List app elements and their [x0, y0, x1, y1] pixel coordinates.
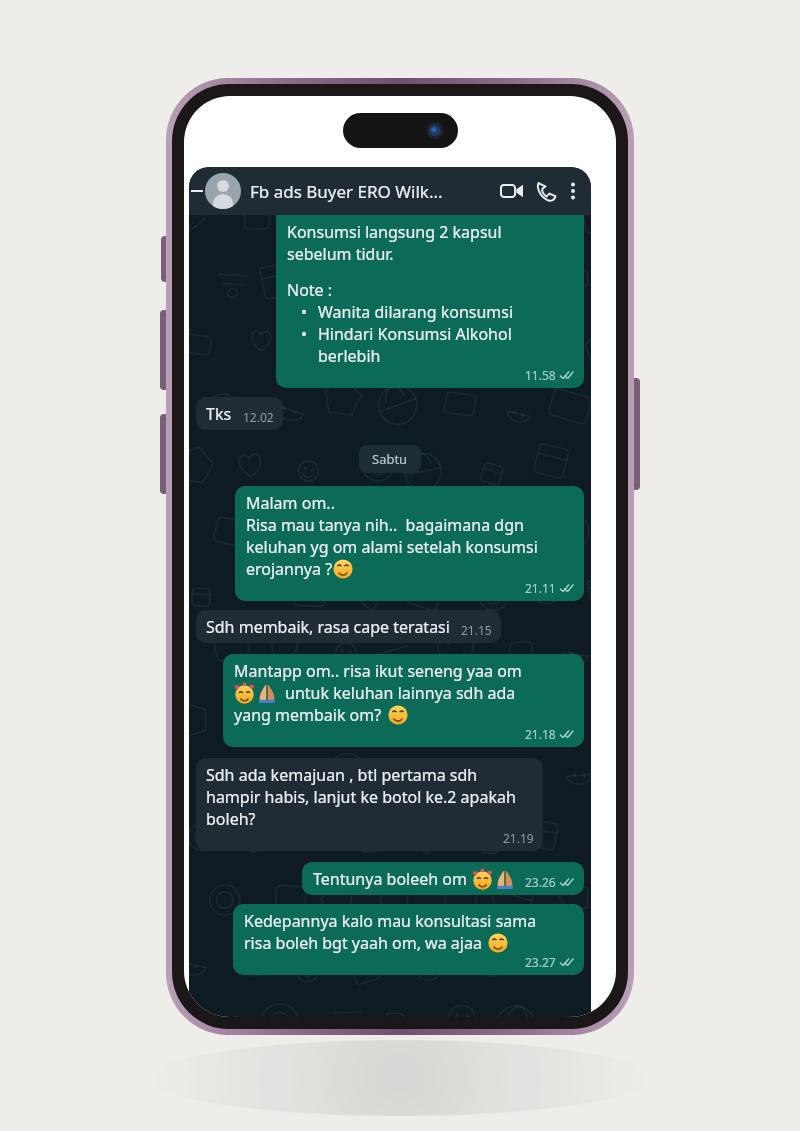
- staticText: Sdh membaik, rasa cape teratasi: [206, 616, 450, 638]
- staticText: 11.58: [525, 367, 556, 383]
- button[interactable]: Malam om..: [235, 486, 584, 601]
- button[interactable]: Contact photo: [205, 173, 241, 209]
- staticText: Tks: [206, 403, 232, 425]
- staticText: Risa mau tanya nih.. bagaimana dgn: [246, 514, 524, 536]
- button[interactable]: Sdh ada kemajuan , btl pertama sdh: [196, 758, 543, 851]
- staticText: untuk keluhan lainnya sdh ada: [285, 682, 516, 704]
- staticText: Hindari Konsumsi Alkohol: [318, 323, 512, 345]
- button[interactable]: Video call: [495, 167, 529, 215]
- staticText: Tentunya boleeh om: [313, 868, 467, 890]
- staticText: Mantapp om.. risa ikut seneng yaa om: [234, 660, 522, 682]
- staticText: 21.11: [525, 580, 556, 596]
- button[interactable]: Tentunya boleeh om: [302, 862, 584, 895]
- staticText: Sdh ada kemajuan , btl pertama sdh: [206, 764, 478, 786]
- staticText: boleh?: [206, 808, 256, 830]
- staticText: Konsumsi langsung 2 kapsul: [287, 221, 502, 243]
- staticText: 21.18: [525, 726, 556, 742]
- button[interactable]: Sdh membaik, rasa cape teratasi: [196, 610, 501, 643]
- button[interactable]: More options: [563, 167, 583, 215]
- button[interactable]: Call: [529, 167, 563, 215]
- staticText: yang membaik om?: [234, 704, 382, 726]
- staticText: hampir habis, lanjut ke botol ke.2 apaka…: [206, 786, 516, 808]
- button[interactable]: Konsumsi langsung 2 kapsul: [276, 215, 584, 388]
- staticText: Kedepannya kalo mau konsultasi sama: [244, 910, 537, 932]
- staticText: 23.26: [525, 874, 556, 890]
- staticText: erojannya ?: [246, 558, 333, 580]
- staticText: 23.27: [525, 954, 556, 970]
- staticText: Fb ads Buyer ERO Wilk...: [250, 180, 495, 203]
- staticText: Malam om..: [246, 492, 335, 514]
- button[interactable]: Kedepannya kalo mau konsultasi sama: [233, 904, 584, 975]
- staticText: Sabtu: [372, 450, 408, 468]
- staticText: 12.02: [243, 409, 274, 425]
- staticText: Wanita dilarang konsumsi: [318, 301, 514, 323]
- staticText: •: [301, 301, 308, 323]
- staticText: 21.15: [461, 622, 492, 638]
- staticText: berlebih: [318, 345, 381, 367]
- button[interactable]: Back: [191, 167, 203, 215]
- staticText: keluhan yg om alami setelah konsumsi: [246, 536, 538, 558]
- button[interactable]: Tks: [196, 397, 283, 430]
- staticText: 21.19: [503, 830, 534, 846]
- staticText: sebelum tidur.: [287, 243, 394, 265]
- staticText: Note :: [287, 279, 333, 301]
- staticText: risa boleh bgt yaah om, wa ajaa: [244, 932, 482, 954]
- button[interactable]: Mantapp om.. risa ikut seneng yaa om: [223, 654, 584, 747]
- button[interactable]: Sabtu: [372, 450, 408, 468]
- staticText: •: [301, 323, 308, 345]
